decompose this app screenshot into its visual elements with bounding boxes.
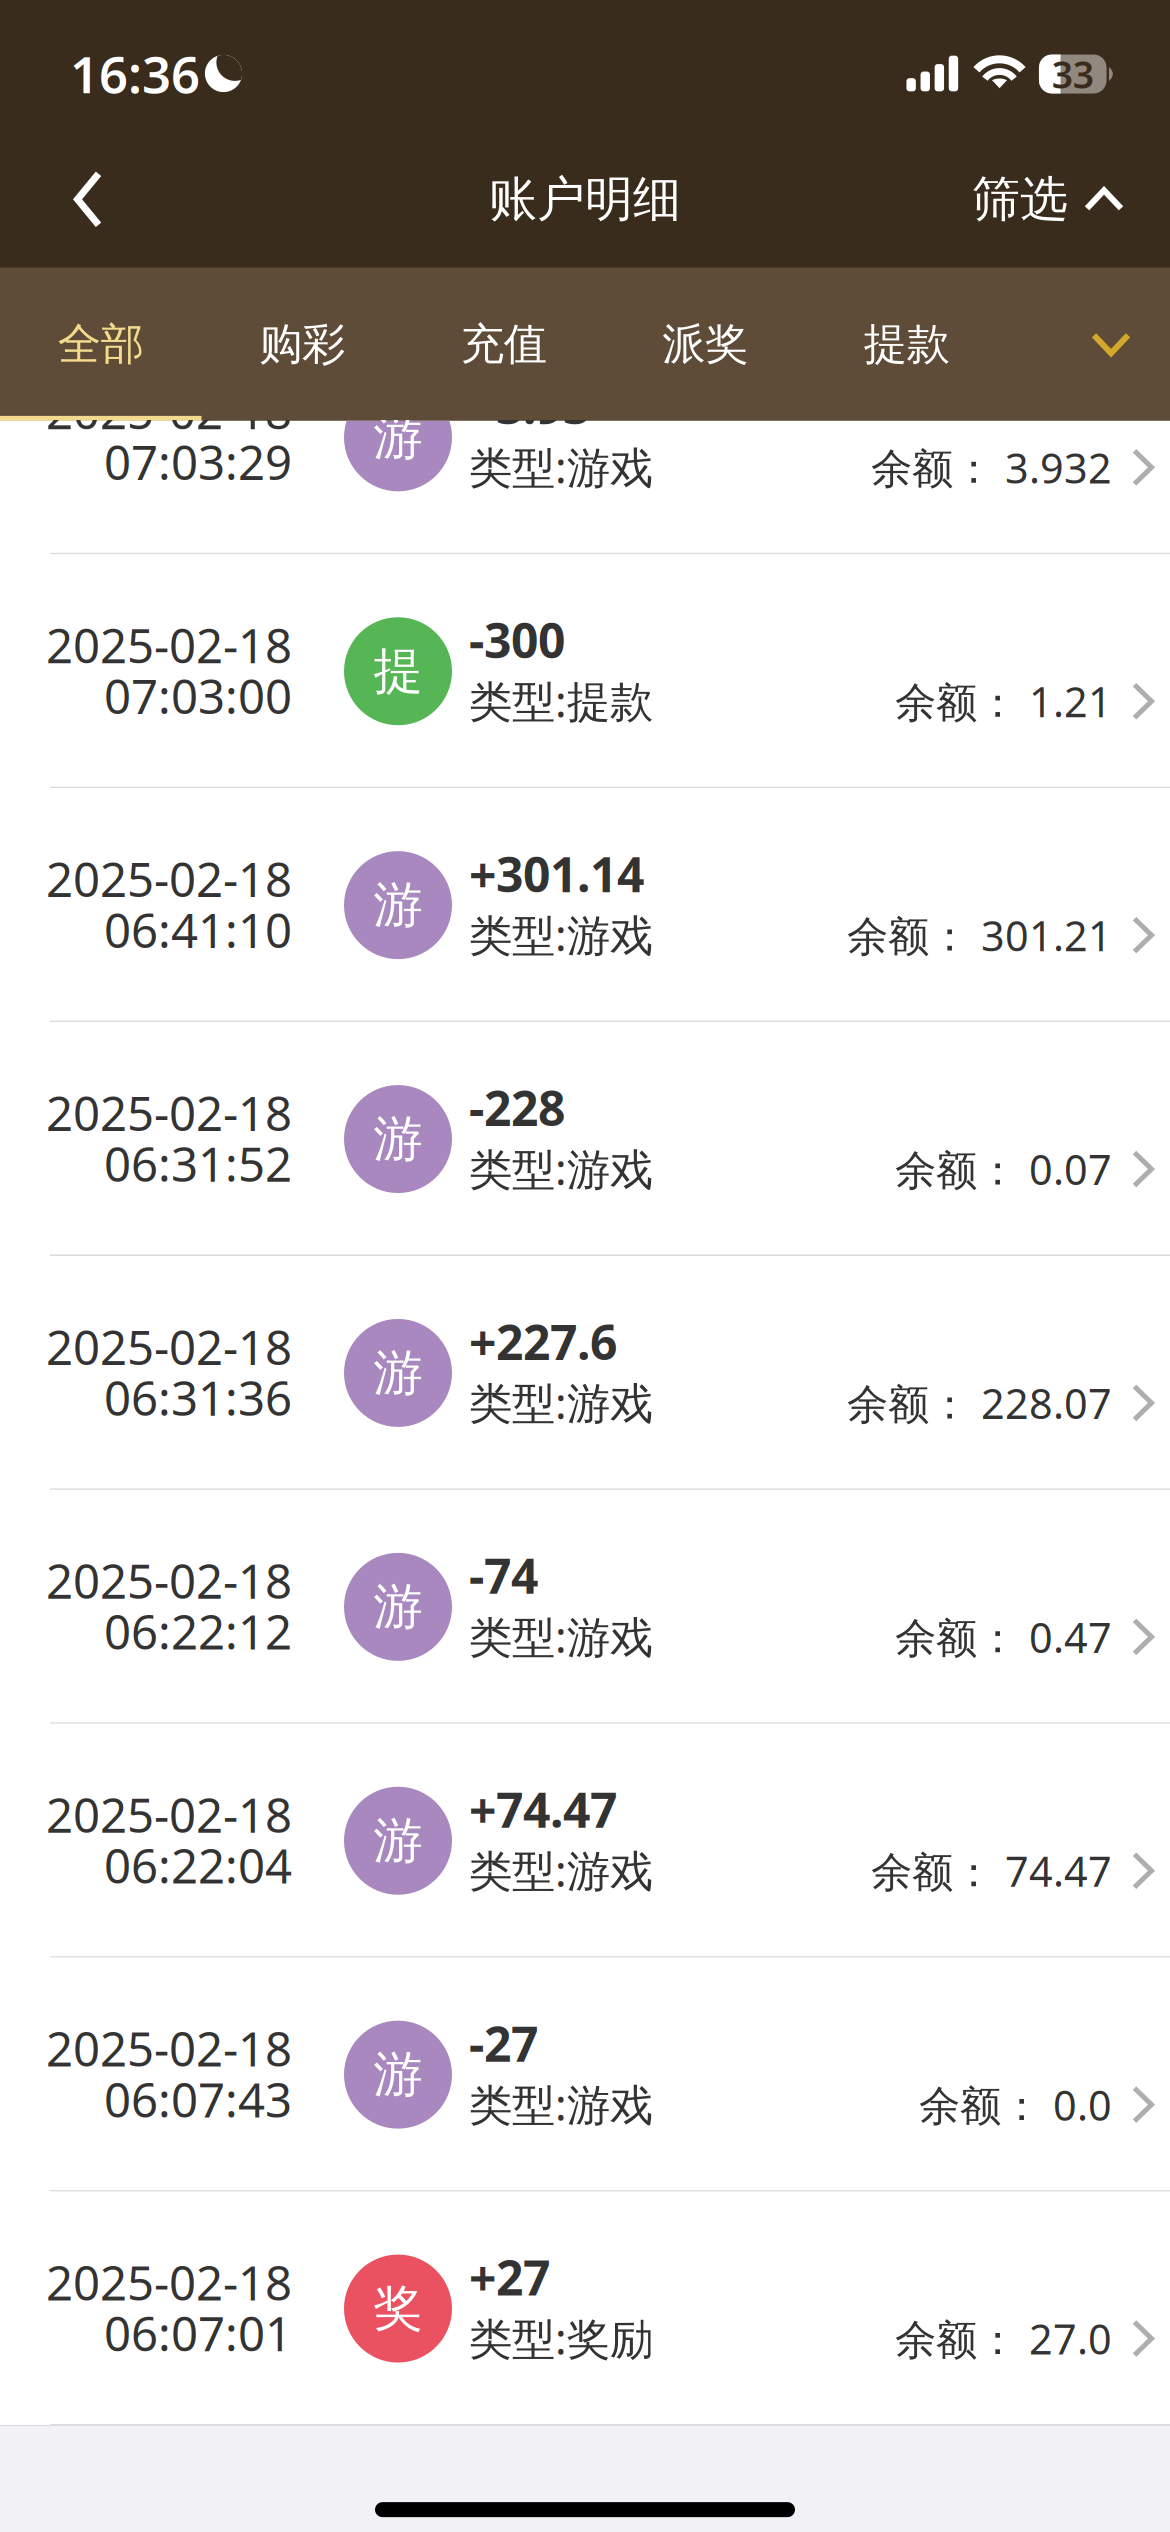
button[interactable]: 2025-02-18 xyxy=(0,1256,1170,1490)
button[interactable]: 2025-02-18 xyxy=(0,1022,1170,1256)
staticText: -27 xyxy=(469,2010,538,2076)
staticText: +301.14 xyxy=(469,841,644,906)
staticText: -74 xyxy=(469,1543,538,1608)
staticText: 类型:提款 xyxy=(469,671,653,730)
staticText: 游 xyxy=(373,1108,422,1170)
staticText: 2025-02-18 xyxy=(46,2250,292,2314)
staticText: 余额： 228.07 xyxy=(847,1375,1112,1431)
staticText: +3.93 xyxy=(469,373,590,438)
staticText: 余额： 3.932 xyxy=(871,439,1112,495)
button[interactable]: 2025-02-18 xyxy=(0,1958,1170,2192)
button[interactable]: 全部 xyxy=(0,268,201,421)
staticText: 提款 xyxy=(864,317,950,372)
button[interactable]: 2025-02-18 xyxy=(0,421,1170,554)
staticText: 类型:游戏 xyxy=(469,1841,653,1900)
staticText: 派奖 xyxy=(662,317,748,372)
staticText: 06:07:43 xyxy=(104,2067,292,2131)
staticText: 奖 xyxy=(373,2277,422,2340)
staticText: 33 xyxy=(1052,49,1094,99)
staticText: 筛选 xyxy=(972,169,1068,230)
staticText: 充值 xyxy=(461,317,547,372)
staticText: 类型:奖励 xyxy=(469,2308,653,2367)
staticText: 余额： 27.0 xyxy=(895,2310,1112,2367)
staticText: 余额： 1.21 xyxy=(895,673,1112,729)
staticText: 游 xyxy=(373,1342,422,1404)
button[interactable]: 2025-02-18 xyxy=(0,788,1170,1022)
staticText: 提 xyxy=(373,640,422,702)
staticText: 2025-02-18 xyxy=(46,1314,292,1379)
staticText: 游 xyxy=(373,1810,422,1872)
staticText: 06:22:04 xyxy=(104,1833,292,1897)
staticText: 余额： 0.47 xyxy=(895,1609,1112,1665)
button[interactable]: 充值 xyxy=(403,268,604,421)
staticText: 06:22:12 xyxy=(104,1599,292,1663)
button[interactable]: 2025-02-18 xyxy=(0,2192,1170,2425)
staticText: 2025-02-18 xyxy=(46,1548,292,1613)
staticText: 游 xyxy=(373,874,422,936)
staticText: 余额： 74.47 xyxy=(871,1843,1112,1899)
button[interactable]: 购彩 xyxy=(201,268,403,421)
staticText: +74.47 xyxy=(469,1776,617,1842)
staticText: 购彩 xyxy=(259,317,345,372)
staticText: 07:03:00 xyxy=(104,663,292,728)
staticText: 余额： 0.0 xyxy=(919,2076,1112,2133)
staticText: 16:36 xyxy=(70,39,200,108)
button[interactable]: 筛选 xyxy=(958,141,1138,258)
button[interactable]: 提款 xyxy=(806,268,1007,421)
staticText: -300 xyxy=(469,607,565,672)
staticText: 07:03:29 xyxy=(104,429,292,494)
staticText: 类型:游戏 xyxy=(469,2074,653,2133)
staticText: +27 xyxy=(469,2244,550,2310)
staticText: 2025-02-18 xyxy=(46,379,292,443)
button[interactable]: 2025-02-18 xyxy=(0,1724,1170,1958)
staticText: 游 xyxy=(373,1576,422,1638)
staticText: 2025-02-18 xyxy=(46,846,292,911)
staticText: 游 xyxy=(373,406,422,468)
button[interactable]: 2025-02-18 xyxy=(0,1490,1170,1724)
staticText: 2025-02-18 xyxy=(46,2016,292,2080)
button[interactable]: Back xyxy=(42,142,134,256)
staticText: 账户明细 xyxy=(489,169,681,230)
staticText: 余额： 301.21 xyxy=(847,907,1112,963)
staticText: 类型:游戏 xyxy=(469,437,653,496)
staticText: 2025-02-18 xyxy=(46,1782,292,1847)
staticText: 类型:游戏 xyxy=(469,1373,653,1432)
staticText: +227.6 xyxy=(469,1309,617,1374)
staticText: 06:31:52 xyxy=(104,1131,292,1196)
staticText: -228 xyxy=(469,1075,565,1140)
staticText: 2025-02-18 xyxy=(46,613,292,677)
staticText: 全部 xyxy=(58,317,144,372)
staticText: 类型:游戏 xyxy=(469,1139,653,1198)
button[interactable]: 派奖 xyxy=(604,268,806,421)
staticText: 余额： 0.07 xyxy=(895,1141,1112,1197)
button[interactable]: 2025-02-18 xyxy=(0,554,1170,788)
staticText: 类型:游戏 xyxy=(469,905,653,964)
staticText: 06:31:36 xyxy=(104,1365,292,1430)
staticText: 06:07:01 xyxy=(104,2301,292,2365)
staticText: 类型:游戏 xyxy=(469,1607,653,1666)
button[interactable]: Expand filters xyxy=(1041,300,1170,388)
staticText: 2025-02-18 xyxy=(46,1080,292,1145)
staticText: 游 xyxy=(373,2044,422,2106)
staticText: 06:41:10 xyxy=(104,897,292,962)
